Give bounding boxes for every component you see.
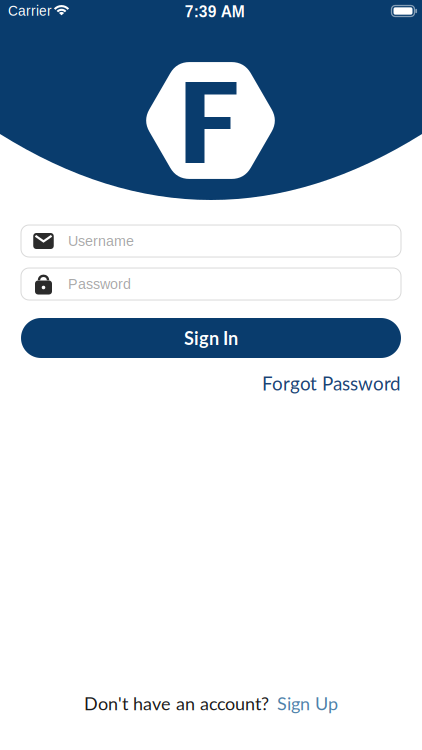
button[interactable]: Forgot Password bbox=[262, 372, 401, 395]
staticText: Sign In bbox=[184, 327, 238, 349]
button[interactable]: Sign In bbox=[21, 318, 401, 358]
staticText: Sign Up bbox=[277, 692, 338, 714]
button[interactable]: Username bbox=[21, 225, 401, 257]
staticText: Username bbox=[68, 233, 134, 249]
button[interactable]: Sign Up bbox=[277, 692, 338, 714]
staticText: Forgot Password bbox=[262, 372, 401, 395]
staticText: Carrier bbox=[8, 3, 52, 19]
staticText: 7:39 AM bbox=[185, 3, 245, 20]
staticText: Password bbox=[68, 276, 131, 292]
staticText: Don't have an account? bbox=[84, 692, 269, 714]
button[interactable]: Password bbox=[21, 268, 401, 300]
